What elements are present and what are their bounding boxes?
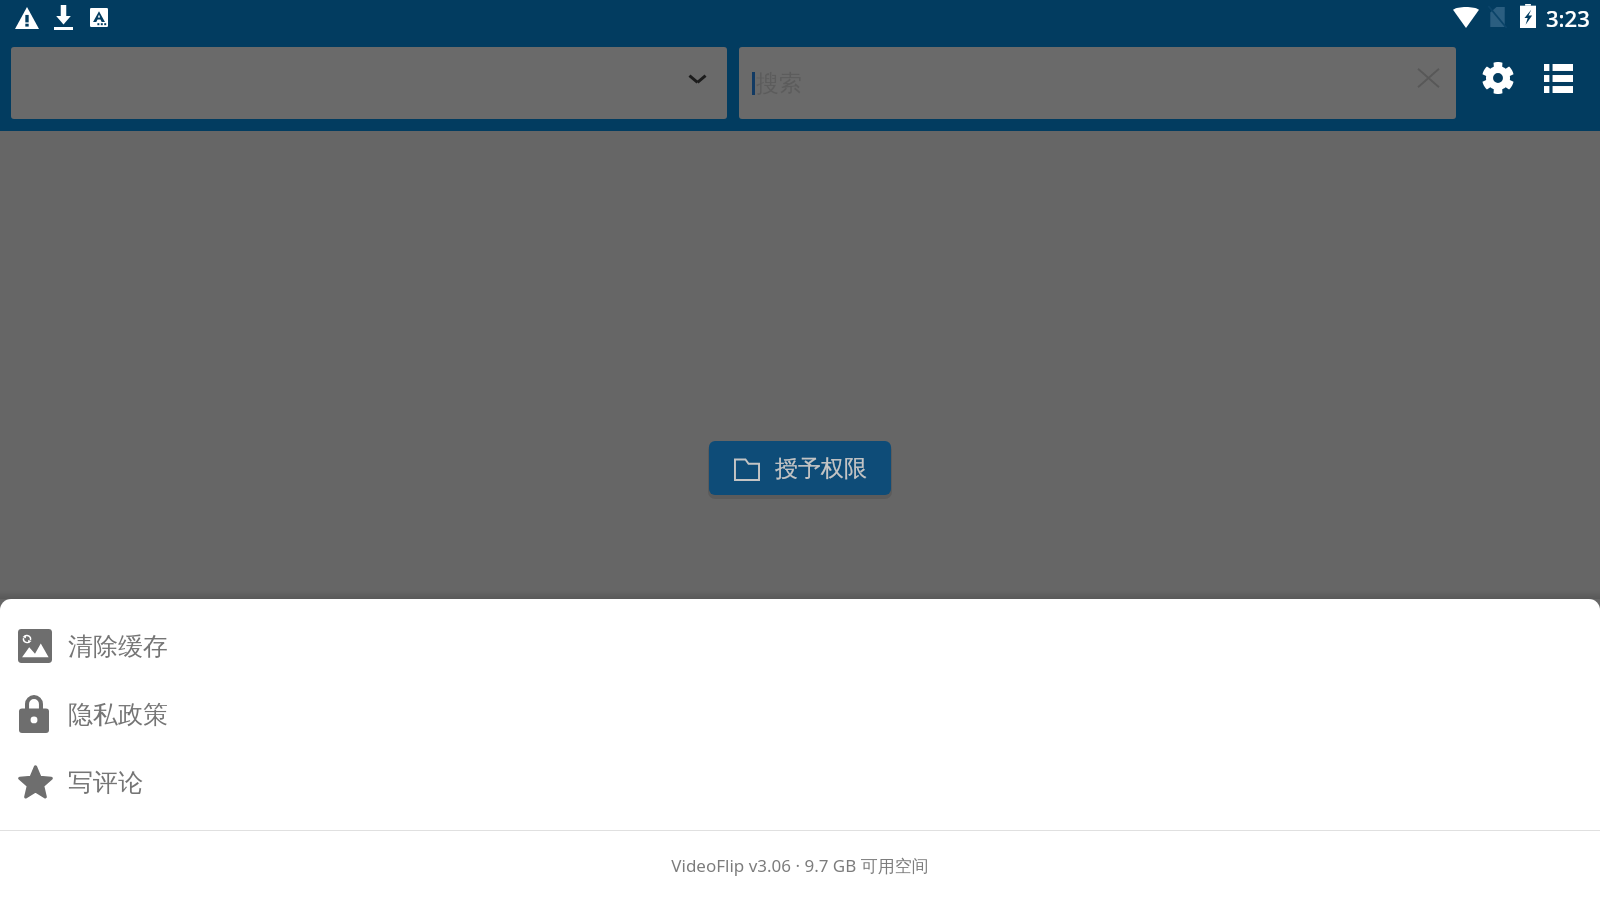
staticText: 3:23 [1546, 3, 1590, 33]
button[interactable]: 授予权限 [709, 441, 891, 495]
staticText: 授予权限 [775, 454, 867, 483]
staticText: 清除缓存 [68, 631, 168, 662]
button[interactable]: Settings [1470, 50, 1526, 106]
staticText: 隐私政策 [68, 699, 168, 730]
button[interactable]: 写评论 [0, 748, 1600, 816]
staticText: 写评论 [68, 767, 143, 798]
button[interactable]: 清除缓存 [0, 612, 1600, 680]
button[interactable]: Clear search [1396, 47, 1456, 119]
staticText: VideoFlip v3.06 · 9.7 GB 可用空间 [671, 854, 929, 877]
button[interactable]: 隐私政策 [0, 680, 1600, 748]
staticText: 搜索 [756, 69, 802, 98]
button[interactable]: 搜索 [739, 47, 1396, 119]
button[interactable]: List view [1530, 50, 1586, 106]
